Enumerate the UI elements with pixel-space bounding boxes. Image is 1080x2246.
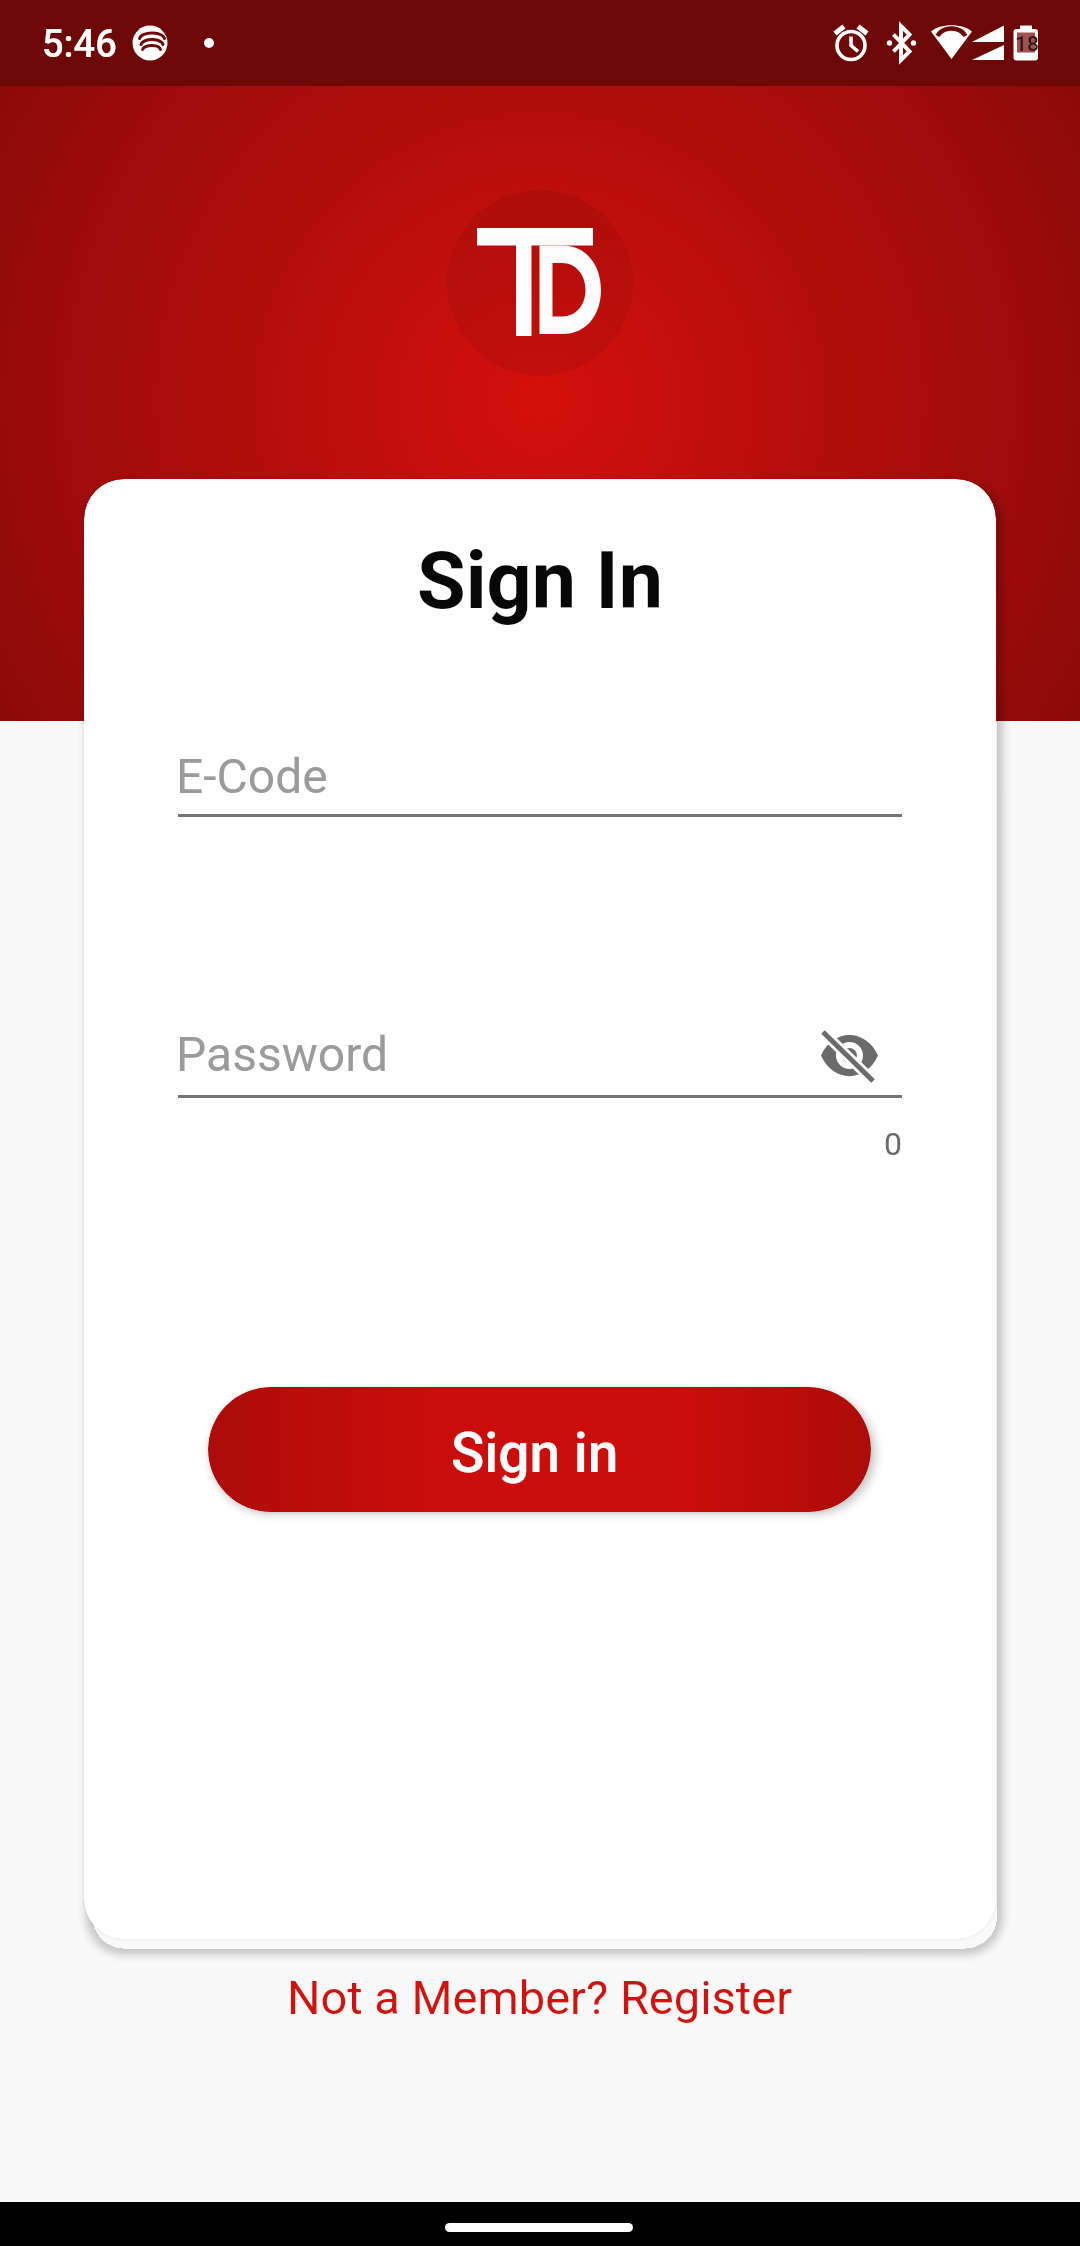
button[interactable]: E-Code	[178, 729, 902, 829]
staticText: Password	[176, 1026, 389, 1082]
staticText: 5:46	[42, 22, 117, 67]
button[interactable]: Sign in	[208, 1387, 871, 1512]
button[interactable]: Password	[178, 1010, 902, 1110]
button[interactable]: Show password	[805, 1017, 887, 1099]
staticText: 0	[178, 1125, 902, 1163]
staticText: Sign In	[84, 535, 996, 628]
staticText: Not a Member? Register	[287, 1970, 793, 2025]
staticText: Sign in	[451, 1421, 619, 1485]
staticText: 18	[1015, 32, 1039, 57]
staticText: E-Code	[176, 748, 328, 804]
button[interactable]: Not a Member? Register	[0, 1955, 1080, 2039]
